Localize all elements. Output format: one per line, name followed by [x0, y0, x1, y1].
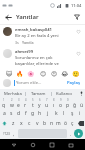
- button[interactable]: l: [60, 108, 68, 118]
- staticText: 5: [32, 98, 34, 102]
- button[interactable]: h: [36, 108, 44, 118]
- staticText: m: [56, 120, 61, 127]
- button[interactable]: 😂: [61, 69, 69, 77]
- staticText: w: [10, 102, 14, 108]
- button[interactable]: ü: [78, 98, 85, 108]
- button[interactable]: d: [15, 108, 22, 118]
- staticText: i: [79, 110, 81, 117]
- button[interactable]: x: [17, 118, 25, 128]
- button[interactable]: Tamam: [26, 89, 51, 98]
- staticText: 0: [67, 98, 69, 102]
- button[interactable]: Filter: [72, 12, 82, 22]
- button[interactable]: ahmet99: [0, 47, 85, 68]
- staticText: u: [45, 102, 49, 108]
- button[interactable]: Send: [74, 129, 83, 138]
- staticText: 3: [18, 98, 20, 102]
- button[interactable]: b: [41, 118, 48, 128]
- button[interactable]: 9: [57, 98, 64, 108]
- button[interactable]: Kullanıcı: [52, 89, 77, 98]
- staticText: 9: [60, 98, 62, 102]
- staticText: Kullanıcı: [56, 91, 73, 97]
- button[interactable]: 😺: [5, 69, 13, 77]
- button[interactable]: Recents: [47, 140, 57, 150]
- button[interactable]: Like: [74, 49, 82, 57]
- staticText: 2: [11, 98, 13, 102]
- button[interactable]: a: [1, 108, 8, 118]
- staticText: b: [43, 120, 47, 127]
- button[interactable]: Shift: [0, 118, 9, 128]
- staticText: x: [20, 120, 23, 127]
- button[interactable]: Voice input: [77, 89, 85, 98]
- button[interactable]: Home: [28, 140, 38, 150]
- staticText: ı: [53, 102, 55, 108]
- button[interactable]: 8: [50, 98, 57, 108]
- button[interactable]: emrah_bakasp041: [0, 25, 85, 47]
- button[interactable]: n: [48, 118, 55, 128]
- button[interactable]: 4: [22, 98, 29, 108]
- staticText: 🔥: [16, 70, 24, 77]
- button[interactable]: m: [55, 118, 62, 128]
- staticText: 7: [46, 98, 48, 102]
- button[interactable]: 0: [64, 98, 71, 108]
- button[interactable]: Comma: [11, 129, 17, 138]
- staticText: n: [50, 120, 54, 127]
- staticText: Sorunlarınız en çok: [15, 55, 53, 61]
- staticText: Merhaba: [4, 91, 22, 97]
- button[interactable]: g: [29, 108, 36, 118]
- button[interactable]: 5: [29, 98, 36, 108]
- button[interactable]: 7: [43, 98, 50, 108]
- button[interactable]: 3: [15, 98, 22, 108]
- button[interactable]: Backspace: [76, 118, 85, 128]
- button[interactable]: ş: [68, 108, 76, 118]
- staticText: emrah_bakasp041: [15, 27, 52, 33]
- button[interactable]: Merhaba: [0, 89, 25, 98]
- staticText: Yanıtla: [22, 40, 34, 45]
- staticText: a: [3, 110, 6, 117]
- button[interactable]: k: [52, 108, 60, 118]
- staticText: ahmet99: [15, 49, 34, 55]
- staticText: 🌸: [27, 70, 35, 77]
- button[interactable]: Period: [68, 129, 74, 138]
- button[interactable]: 2: [8, 98, 15, 108]
- staticText: d: [17, 110, 21, 117]
- button[interactable]: f: [22, 108, 29, 118]
- button[interactable]: j: [44, 108, 52, 118]
- button[interactable]: Paylaş: [66, 79, 82, 87]
- button[interactable]: ç: [69, 118, 76, 128]
- staticText: 6: [39, 98, 41, 102]
- button[interactable]: z: [9, 118, 17, 128]
- button[interactable]: Back: [9, 140, 19, 150]
- staticText: y: [38, 102, 41, 108]
- staticText: ş: [71, 110, 74, 117]
- button[interactable]: 🙂: [72, 69, 80, 77]
- staticText: .: [70, 131, 72, 137]
- button[interactable]: 😍: [50, 69, 58, 77]
- button[interactable]: Like: [74, 27, 82, 35]
- button[interactable]: 🔥: [16, 69, 24, 77]
- button[interactable]: s: [8, 108, 15, 118]
- button[interactable]: ğ: [71, 98, 78, 108]
- staticText: k: [55, 110, 58, 117]
- staticText: Bir ay 2 en fazla 4 yeni: [15, 33, 59, 39]
- button[interactable]: Hide keyboard: [66, 140, 76, 150]
- staticText: z: [12, 120, 15, 127]
- staticText: 😍: [51, 70, 58, 77]
- button[interactable]: 🌸: [27, 69, 35, 77]
- staticText: 😊: [40, 70, 47, 77]
- button[interactable]: i: [76, 108, 84, 118]
- button[interactable]: 6: [36, 98, 43, 108]
- button[interactable]: ö: [62, 118, 69, 128]
- staticText: ç: [71, 120, 74, 127]
- staticText: 🙂: [72, 70, 80, 77]
- button[interactable]: v: [33, 118, 41, 128]
- staticText: başarılılar, ellerinde ve: [15, 61, 59, 66]
- staticText: s: [10, 110, 13, 117]
- button[interactable]: 1: [0, 98, 8, 108]
- button[interactable]: ?123: [1, 129, 11, 138]
- staticText: h: [38, 110, 42, 117]
- button[interactable]: Back: [3, 12, 13, 22]
- button[interactable]: 😊: [39, 69, 47, 77]
- button[interactable]: c: [25, 118, 33, 128]
- staticText: 1: [3, 98, 5, 102]
